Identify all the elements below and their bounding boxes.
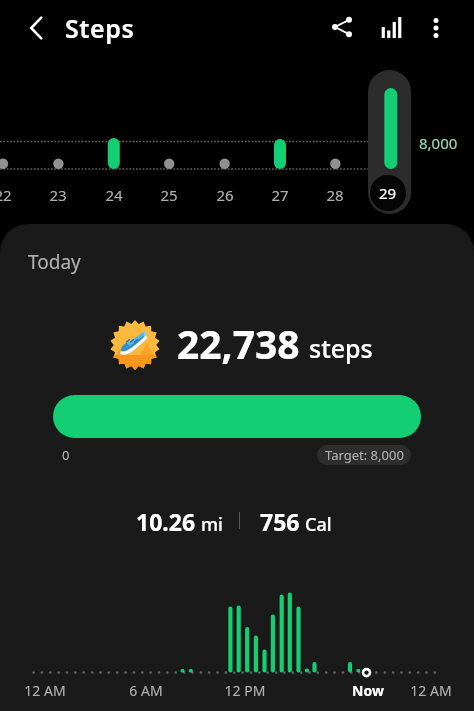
button[interactable]: Share: [318, 3, 366, 51]
staticText: 6 AM: [111, 681, 181, 700]
staticText: Steps: [65, 11, 135, 45]
staticText: 8,000: [419, 133, 458, 153]
staticText: Today: [28, 249, 81, 275]
staticText: 26: [205, 185, 245, 205]
staticText: Cal: [305, 512, 332, 537]
staticText: Target: 8,000: [325, 446, 404, 464]
staticText: 12 AM: [396, 681, 466, 700]
staticText: 27: [260, 185, 300, 205]
staticText: steps: [309, 331, 373, 365]
button[interactable]: Step progress: [53, 395, 421, 438]
staticText: 10.26: [136, 506, 196, 537]
button[interactable]: Day 29: [368, 70, 411, 214]
staticText: 28: [315, 185, 355, 205]
staticText: 29: [379, 183, 397, 203]
button[interactable]: Back: [12, 4, 60, 52]
staticText: 756: [260, 506, 300, 537]
button[interactable]: More options: [412, 4, 460, 52]
staticText: 12 AM: [10, 681, 80, 700]
staticText: 0: [62, 446, 70, 464]
staticText: 12 PM: [210, 681, 280, 700]
staticText: 25: [149, 185, 189, 205]
staticText: mi: [201, 512, 223, 537]
button[interactable]: View chart: [367, 3, 415, 51]
staticText: 24: [94, 185, 134, 205]
staticText: 22,738: [177, 317, 300, 370]
staticText: 23: [38, 185, 78, 205]
staticText: Now: [333, 681, 403, 700]
staticText: 22: [0, 185, 23, 205]
